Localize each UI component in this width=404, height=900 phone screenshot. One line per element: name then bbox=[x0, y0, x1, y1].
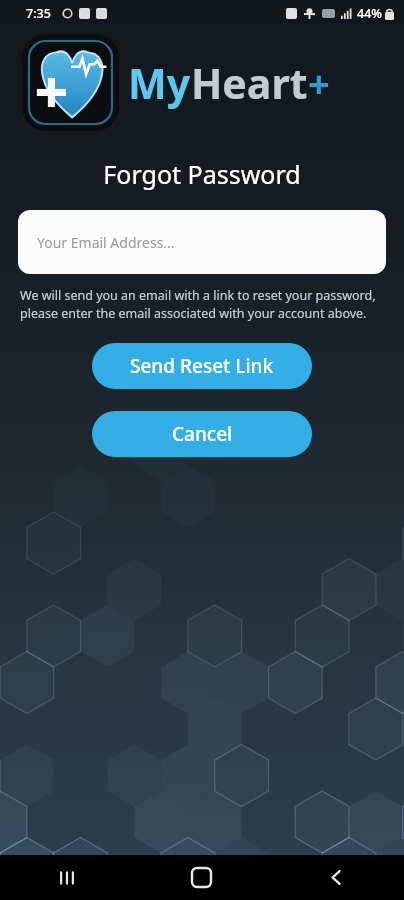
staticText: Forgot Password bbox=[0, 157, 404, 191]
staticText: Your Email Address... bbox=[37, 233, 175, 252]
staticText: My bbox=[128, 55, 191, 111]
staticText: 7:35 bbox=[26, 5, 51, 22]
staticText: + bbox=[308, 57, 330, 109]
button[interactable]: Cancel bbox=[92, 411, 312, 457]
staticText: 44% bbox=[357, 5, 382, 22]
button[interactable]: Send Reset Link bbox=[92, 343, 312, 389]
button[interactable]: Your Email Address... bbox=[18, 210, 386, 274]
staticText: Send Reset Link bbox=[130, 353, 274, 379]
button[interactable]: Recent apps bbox=[0, 855, 134, 900]
staticText: Heart bbox=[191, 55, 308, 111]
button[interactable]: Home bbox=[134, 855, 269, 900]
staticText: We will send you an email with a link to… bbox=[20, 287, 382, 322]
staticText: Cancel bbox=[172, 421, 233, 447]
button[interactable]: Back bbox=[269, 855, 404, 900]
